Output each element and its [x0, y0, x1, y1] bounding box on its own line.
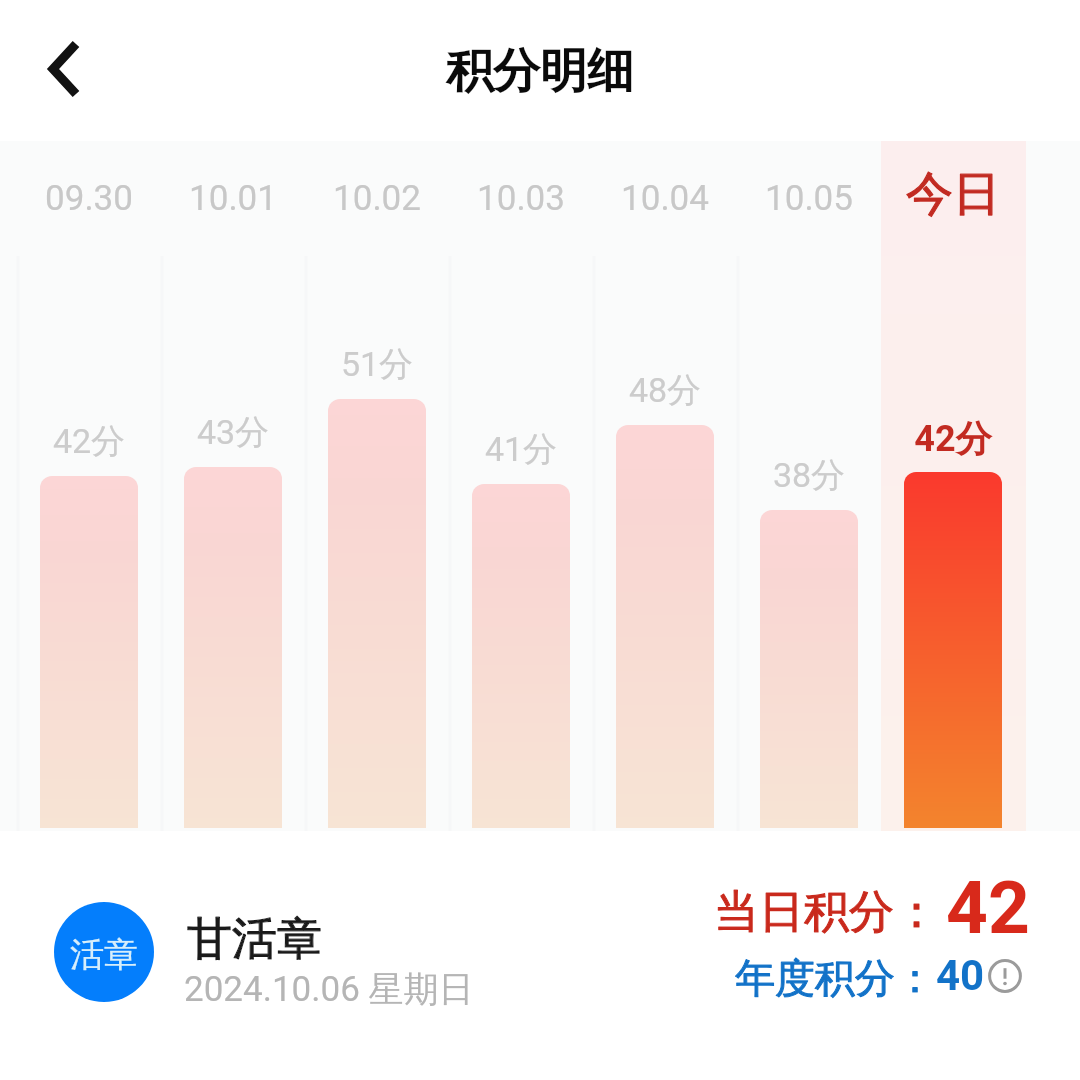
button[interactable]	[760, 510, 858, 828]
staticText: 2024.10.06 星期日	[184, 967, 474, 1011]
button[interactable]: 年度积分：	[735, 953, 945, 1003]
button[interactable]: 当日积分：	[714, 884, 944, 941]
button[interactable]: Avatar	[54, 902, 154, 1002]
staticText: 42	[946, 865, 1030, 951]
staticText: 甘活章	[187, 911, 347, 968]
staticText: 09.30	[15, 178, 163, 219]
staticText: 当日积分：	[714, 884, 944, 941]
button[interactable]: Back	[20, 26, 106, 112]
staticText: 42分	[884, 416, 1022, 461]
staticText: 当日积分：	[714, 884, 944, 941]
staticText: 10.02	[303, 178, 451, 219]
button[interactable]	[40, 476, 138, 828]
staticText: 42分	[20, 420, 158, 463]
staticText: 积分明细	[446, 42, 634, 101]
staticText: 51分	[308, 343, 446, 386]
staticText: 活章	[70, 933, 138, 976]
staticText: 48分	[596, 369, 734, 412]
button[interactable]	[328, 399, 426, 828]
staticText: 38分	[740, 454, 878, 497]
staticText: 年度积分：	[735, 953, 945, 1003]
staticText: 10.01	[159, 178, 307, 219]
staticText: 41分	[452, 428, 590, 471]
staticText: 40	[936, 951, 985, 1000]
staticText: 今日	[879, 165, 1027, 224]
button[interactable]: 甘活章	[187, 911, 347, 968]
staticText: 今日	[879, 165, 1027, 224]
button[interactable]	[472, 484, 570, 828]
staticText: 10.05	[735, 178, 883, 219]
staticText: 43分	[164, 411, 302, 454]
staticText: 10.04	[591, 178, 739, 219]
button[interactable]: Info	[988, 959, 1022, 993]
button[interactable]	[184, 467, 282, 828]
button[interactable]	[904, 472, 1002, 828]
staticText: 年度积分：	[735, 953, 945, 1003]
button[interactable]	[616, 425, 714, 828]
staticText: 10.03	[447, 178, 595, 219]
staticText: 甘活章	[187, 911, 347, 968]
